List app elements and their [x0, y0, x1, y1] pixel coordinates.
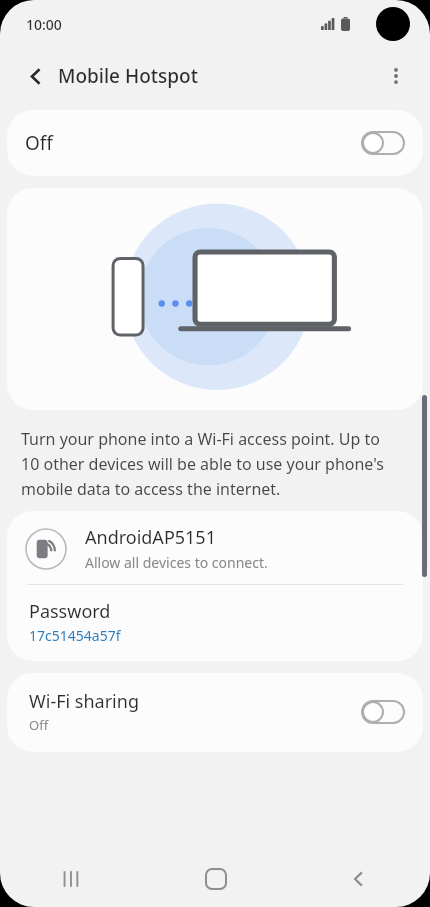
button[interactable]: Wi-Fi sharing: [7, 673, 423, 752]
button[interactable]: Password: [7, 585, 423, 661]
button[interactable]: More options: [374, 54, 418, 98]
staticText: Off: [29, 716, 49, 734]
button[interactable]: Back: [287, 851, 430, 907]
staticText: Mobile Hotspot: [58, 63, 198, 89]
staticText: Off: [25, 130, 53, 156]
staticText: AndroidAP5151: [85, 525, 216, 550]
staticText: Wi-Fi sharing: [29, 689, 139, 714]
staticText: Allow all devices to connect.: [85, 553, 268, 572]
button[interactable]: Recents: [0, 851, 144, 907]
staticText: Password: [29, 599, 111, 624]
staticText: Turn your phone into a Wi-Fi access poin…: [21, 428, 384, 499]
staticText: 10:00: [26, 15, 62, 34]
button[interactable]: AndroidAP5151: [7, 511, 423, 584]
button[interactable]: Off: [7, 110, 423, 176]
button[interactable]: Back: [14, 54, 58, 98]
staticText: 17c51454a57f: [29, 626, 121, 645]
button[interactable]: Home: [144, 851, 287, 907]
